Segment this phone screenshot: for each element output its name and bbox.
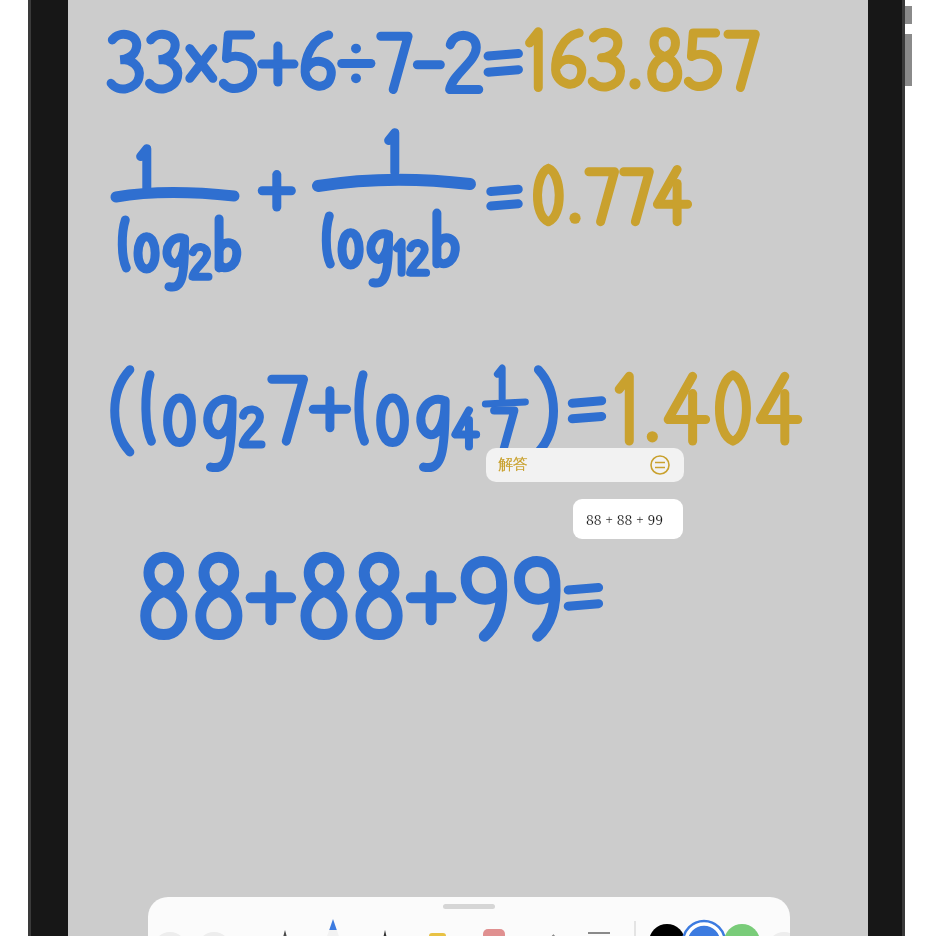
button[interactable]: Solve bbox=[650, 455, 670, 475]
staticText: 88 + 88 + 99 bbox=[586, 510, 664, 529]
button[interactable]: 88 + 88 + 99 bbox=[573, 499, 683, 539]
staticText: 解答 bbox=[498, 455, 528, 474]
button[interactable]: 解答 bbox=[486, 448, 684, 482]
